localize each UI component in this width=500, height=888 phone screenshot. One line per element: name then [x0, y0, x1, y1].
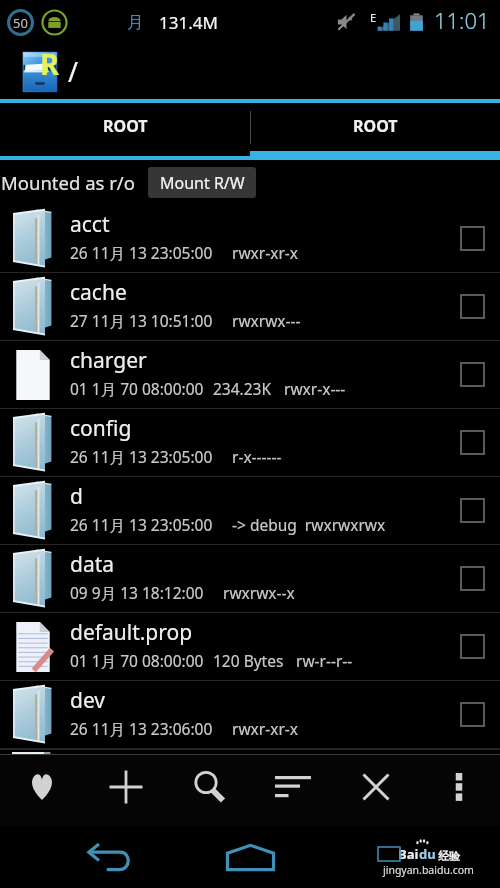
staticText: acct: [70, 210, 110, 239]
staticText: d: [70, 482, 83, 511]
button[interactable]: Select data: [444, 545, 500, 612]
staticText: 26 11月 13 23:05:00: [70, 514, 213, 535]
staticText: 01 1月 70 08:00:00: [70, 650, 204, 671]
staticText: 09 9月 13 18:12:00: [70, 582, 204, 603]
button[interactable]: default.prop: [0, 613, 500, 680]
button[interactable]: New: [84, 755, 168, 819]
staticText: Bai: [398, 845, 419, 863]
button[interactable]: Back: [40, 826, 180, 888]
button[interactable]: ROOT: [0, 103, 250, 151]
staticText: data: [70, 550, 115, 579]
staticText: 26 11月 13 23:05:00: [70, 446, 213, 467]
staticText: ROOT: [353, 115, 398, 137]
staticText: rwxr-xr-x: [232, 718, 298, 739]
staticText: rwxr-x---: [284, 378, 346, 399]
button[interactable]: config: [0, 409, 500, 476]
button[interactable]: cache: [0, 273, 500, 340]
staticText: charger: [70, 346, 147, 375]
staticText: R: [40, 44, 60, 83]
button[interactable]: Select config: [444, 409, 500, 476]
button[interactable]: Close: [334, 755, 417, 819]
staticText: dev: [70, 686, 106, 715]
staticText: 26 11月 13 23:06:00: [70, 718, 213, 739]
staticText: Mount R/W: [160, 172, 245, 194]
staticText: rwxrwx---: [232, 310, 301, 331]
staticText: -> debug rwxrwxrwx: [232, 514, 386, 535]
staticText: 120 Bytes: [213, 650, 284, 671]
staticText: config: [70, 414, 132, 443]
staticText: /: [68, 53, 79, 90]
staticText: 234.23K: [213, 378, 272, 399]
button[interactable]: dev: [0, 681, 500, 748]
button[interactable]: Home: [180, 826, 320, 888]
staticText: ROOT: [103, 115, 148, 137]
staticText: E: [370, 10, 377, 25]
staticText: 27 11月 13 10:51:00: [70, 310, 213, 331]
button[interactable]: acct: [0, 205, 500, 272]
button[interactable]: Favorites: [0, 755, 84, 819]
staticText: 50: [13, 14, 28, 32]
staticText: 经验: [438, 849, 460, 863]
button[interactable]: Sort: [251, 755, 334, 819]
button[interactable]: ROOT: [250, 103, 500, 151]
staticText: 01 1月 70 08:00:00: [70, 378, 204, 399]
button[interactable]: Search: [168, 755, 251, 819]
button[interactable]: charger: [0, 341, 500, 408]
staticText: 131.4M: [159, 11, 218, 34]
staticText: 26 11月 13 23:05:00: [70, 242, 213, 263]
button[interactable]: Select dev: [444, 681, 500, 748]
button[interactable]: Recents: [320, 826, 500, 888]
staticText: jingyan.baidu.com: [383, 863, 474, 877]
button[interactable]: Select charger: [444, 341, 500, 408]
button[interactable]: More: [417, 755, 500, 819]
staticText: rw-r--r--: [296, 650, 353, 671]
staticText: r-x------: [232, 446, 282, 467]
button[interactable]: Select d: [444, 477, 500, 544]
button[interactable]: Select acct: [444, 205, 500, 272]
button[interactable]: Select cache: [444, 273, 500, 340]
button[interactable]: Select default.prop: [444, 613, 500, 680]
staticText: du: [419, 845, 436, 863]
staticText: default.prop: [70, 618, 193, 647]
staticText: Mounted as r/o: [1, 170, 135, 195]
staticText: 11:01: [434, 5, 490, 35]
staticText: rwxrwx--x: [223, 582, 295, 603]
staticText: cache: [70, 278, 127, 307]
staticText: 月: [127, 12, 144, 33]
button[interactable]: d: [0, 477, 500, 544]
button[interactable]: data: [0, 545, 500, 612]
staticText: rwxr-xr-x: [232, 242, 298, 263]
button[interactable]: Mount R/W: [148, 167, 256, 198]
